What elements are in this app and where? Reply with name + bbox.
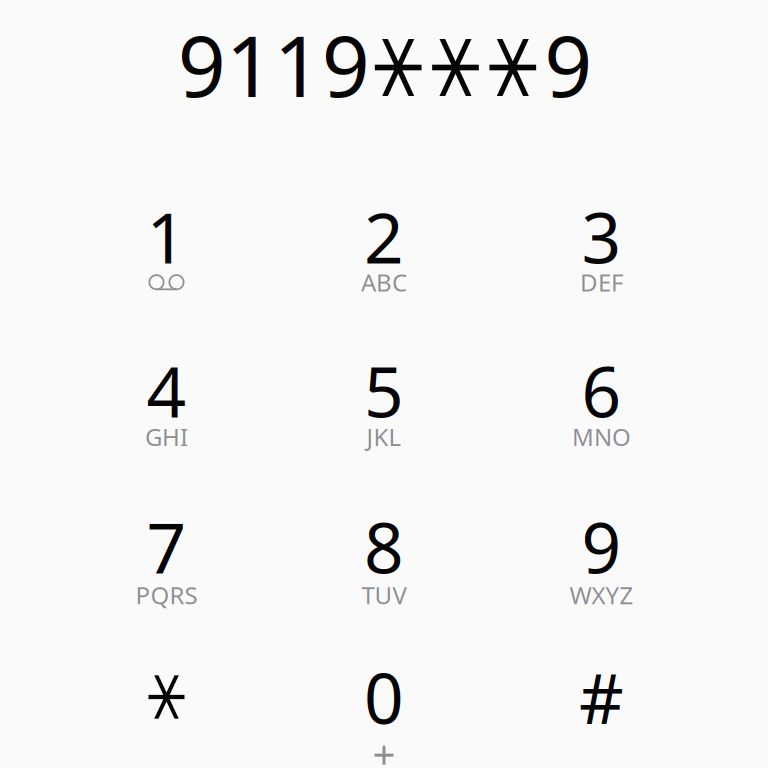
staticText: MNO (572, 421, 631, 453)
staticText: 9 (581, 500, 621, 593)
staticText: PQRS (135, 579, 197, 611)
button[interactable]: 6 MNO (506, 323, 696, 459)
staticText: 6 (581, 345, 621, 437)
button[interactable]: 5 JKL (289, 323, 479, 459)
staticText: JKL (366, 421, 401, 453)
button[interactable]: 1 (71, 169, 261, 305)
button[interactable]: 4 GHI (71, 323, 261, 459)
staticText: # (579, 651, 624, 743)
staticText: 2 (364, 191, 404, 283)
staticText: 7 (146, 500, 186, 593)
button[interactable]: 9 WXYZ (506, 478, 696, 614)
staticText: GHI (145, 421, 188, 453)
staticText: WXYZ (569, 579, 633, 611)
staticText: 3 (581, 191, 621, 283)
button[interactable]: Star (71, 629, 261, 765)
staticText: 9119 (178, 9, 370, 120)
staticText: 9 (544, 9, 592, 120)
staticText: 5 (364, 345, 404, 437)
button[interactable]: 2 ABC (289, 169, 479, 305)
staticText: DEF (580, 266, 623, 298)
button[interactable]: 0 plus (289, 629, 479, 765)
staticText: 8 (364, 500, 404, 593)
staticText: 0 (364, 651, 404, 743)
staticText: 1 (146, 191, 186, 283)
button[interactable]: 8 TUV (289, 478, 479, 614)
staticText: 4 (146, 345, 186, 437)
button[interactable]: 7 PQRS (71, 478, 261, 614)
button[interactable]: 3 DEF (506, 169, 696, 305)
staticText: TUV (361, 579, 406, 611)
button[interactable]: Pound (506, 629, 696, 765)
staticText: ABC (361, 266, 407, 298)
